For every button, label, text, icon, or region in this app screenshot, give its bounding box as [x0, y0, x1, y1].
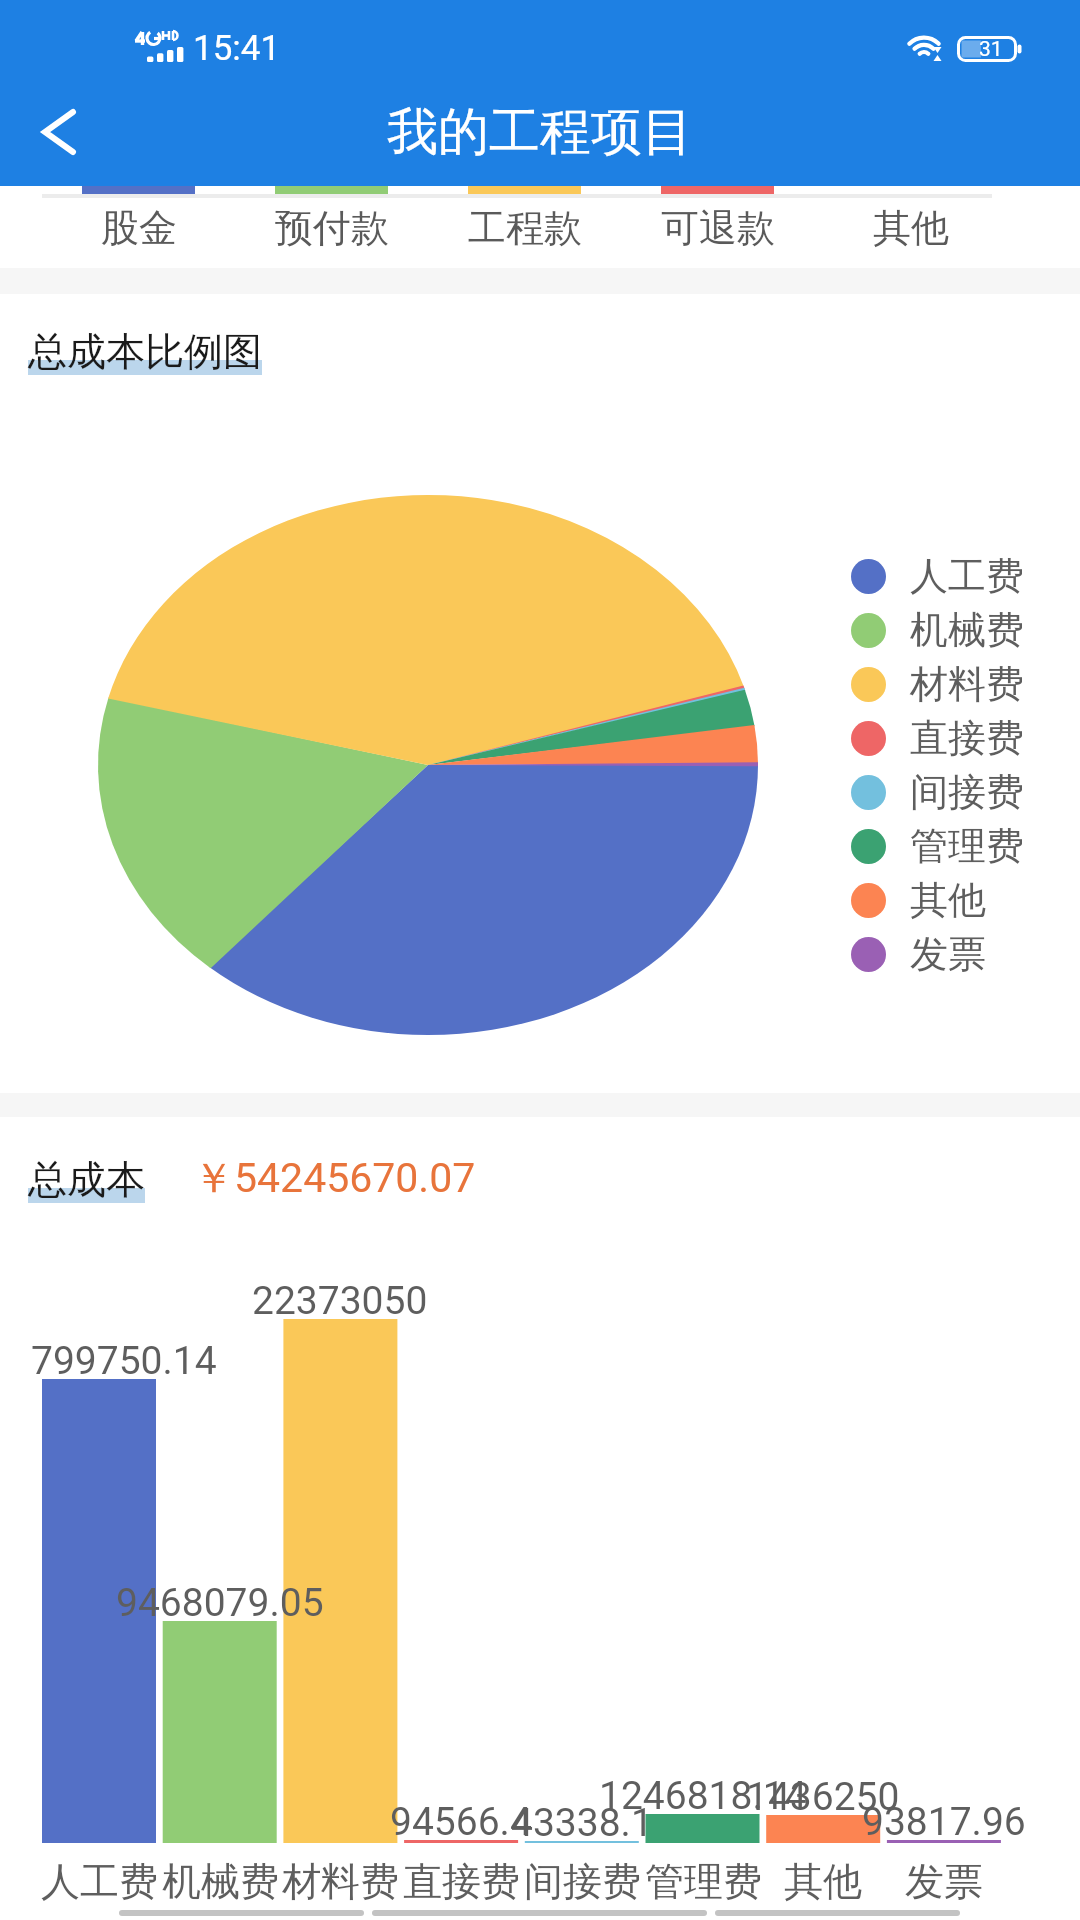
staticText: 股金 [101, 204, 177, 252]
staticText: 机械费 [910, 606, 1024, 654]
staticText: 22373050 [252, 1278, 428, 1324]
staticText: 发票 [910, 930, 986, 978]
button[interactable]: 材料费 [851, 657, 1024, 711]
staticText: 人工费 [910, 552, 1024, 600]
staticText: 管理费 [910, 822, 1024, 870]
button[interactable]: Back [0, 78, 118, 186]
staticText: 间接费 [524, 1857, 641, 1906]
staticText: 其他 [910, 876, 986, 924]
staticText: 43338.1 [511, 1800, 653, 1846]
staticText: 预付款 [275, 204, 389, 252]
staticText: 我的工程项目 [387, 100, 693, 164]
staticText: 其他 [784, 1857, 862, 1906]
staticText: 总成本比例图 [28, 327, 262, 376]
button[interactable]: 直接费 [851, 711, 1024, 765]
button[interactable]: 人工费 [851, 549, 1024, 603]
staticText: 9468079.05 [116, 1580, 324, 1626]
staticText: 799750.14 [31, 1338, 217, 1384]
staticText: 材料费 [282, 1857, 399, 1906]
staticText: 材料费 [910, 660, 1024, 708]
staticText: 15:41 [193, 28, 281, 69]
staticText: 1436250 [746, 1774, 900, 1820]
staticText: 31 [979, 37, 1003, 62]
staticText: 94566.4 [390, 1799, 532, 1845]
button[interactable]: 管理费 [851, 819, 1024, 873]
button[interactable]: 其他 [851, 873, 986, 927]
staticText: ￥54245670.07 [193, 1153, 476, 1205]
staticText: 1246818.14 [599, 1773, 807, 1819]
button[interactable]: 其他 [814, 186, 1007, 268]
staticText: 机械费 [162, 1857, 279, 1906]
staticText: 可退款 [661, 204, 775, 252]
staticText: 管理费 [645, 1857, 762, 1906]
staticText: 其他 [873, 204, 949, 252]
staticText: 直接费 [403, 1857, 520, 1906]
button[interactable]: 机械费 [851, 603, 1024, 657]
button[interactable]: 间接费 [851, 765, 1024, 819]
button[interactable]: 发票 [851, 927, 986, 981]
button[interactable]: 可退款 [621, 186, 814, 268]
button[interactable]: 预付款 [235, 186, 428, 268]
staticText: 发票 [905, 1857, 983, 1906]
staticText: 工程款 [468, 204, 582, 252]
staticText: 总成本 [28, 1155, 145, 1204]
staticText: 直接费 [910, 714, 1024, 762]
staticText: 93817.96 [862, 1799, 1026, 1845]
staticText: 间接费 [910, 768, 1024, 816]
button[interactable]: 工程款 [428, 186, 621, 268]
staticText: 人工费 [41, 1857, 158, 1906]
button[interactable]: 股金 [42, 186, 235, 268]
